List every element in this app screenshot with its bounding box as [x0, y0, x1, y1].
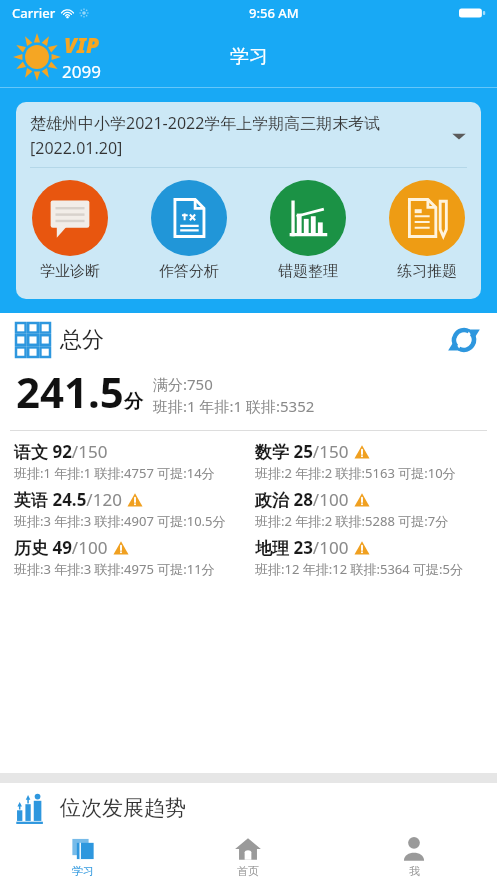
staticText: 班排:1 年排:1 联排:5352 [153, 396, 315, 416]
staticText: 学习 [72, 864, 94, 878]
staticText: 位次发展趋势 [60, 795, 186, 821]
staticText: 语文 92/150 [14, 440, 108, 463]
button[interactable]: 楚雄州中小学2021-2022学年上学期高三期末考试[2022.01.20] [30, 112, 467, 159]
staticText: 2099 [62, 60, 101, 83]
staticText: 学习 [230, 45, 268, 69]
button[interactable]: Refresh [447, 323, 481, 357]
staticText: 楚雄州中小学2021-2022学年上学期高三期末考试[2022.01.20] [30, 112, 443, 159]
staticText: 9:56 AM [249, 4, 299, 22]
staticText: 班排:1 年排:1 联排:4757 可提:14分 [14, 464, 215, 482]
staticText: VIP [64, 31, 99, 60]
staticText: 练习推题 [397, 262, 457, 281]
staticText: 班排:2 年排:2 联排:5288 可提:7分 [255, 512, 449, 530]
button[interactable]: 我 [331, 829, 497, 883]
staticText: 班排:2 年排:2 联排:5163 可提:10分 [255, 464, 456, 482]
button[interactable]: 地理 23/100 [255, 533, 483, 581]
button[interactable]: 数学 25/150 [255, 437, 483, 485]
button[interactable]: 学业诊断 [30, 180, 110, 281]
staticText: 班排:12 年排:12 联排:5364 可提:5分 [255, 560, 464, 578]
button[interactable]: 语文 92/150 [14, 437, 241, 485]
staticText: 首页 [237, 864, 259, 878]
button[interactable]: 政治 28/100 [255, 485, 483, 533]
staticText: 数学 25/150 [255, 440, 349, 463]
button[interactable]: 英语 24.5/120 [14, 485, 241, 533]
staticText: 班排:3 年排:3 联排:4907 可提:10.5分 [14, 512, 226, 530]
button[interactable]: 错题整理 [268, 180, 348, 281]
staticText: 总分 [60, 326, 104, 354]
staticText: 作答分析 [159, 262, 219, 281]
staticText: 政治 28/100 [255, 488, 349, 511]
staticText: Carrier [12, 4, 56, 22]
staticText: 错题整理 [278, 262, 338, 281]
staticText: 地理 23/100 [255, 536, 349, 559]
staticText: 英语 24.5/120 [14, 488, 122, 511]
button[interactable]: 首页 [165, 829, 331, 883]
button[interactable]: 历史 49/100 [14, 533, 241, 581]
staticText: 我 [409, 864, 420, 878]
button[interactable]: 练习推题 [387, 180, 467, 281]
button[interactable]: 位次发展趋势 [14, 789, 497, 827]
staticText: 241.5分 [16, 363, 143, 420]
staticText: 学业诊断 [40, 262, 100, 281]
staticText: 班排:3 年排:3 联排:4975 可提:11分 [14, 560, 215, 578]
button[interactable]: 作答分析 [149, 180, 229, 281]
other: Expand [451, 128, 467, 144]
button[interactable]: VIP [14, 31, 101, 83]
staticText: 历史 49/100 [14, 536, 108, 559]
staticText: 满分:750 [153, 374, 213, 394]
button[interactable]: 学习 [0, 829, 165, 883]
